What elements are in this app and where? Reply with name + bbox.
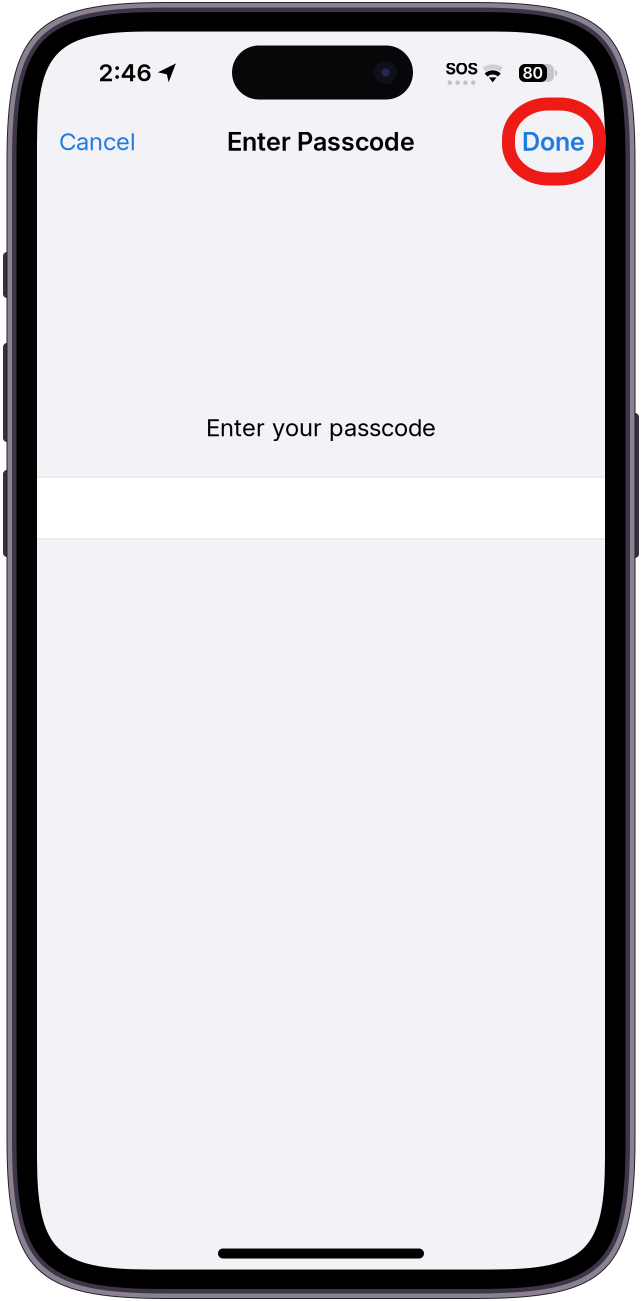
staticText: 80 [522, 63, 543, 83]
staticText: Cancel [59, 127, 136, 156]
staticText: Enter Passcode [227, 126, 415, 157]
staticText: 2:46 [98, 58, 151, 87]
button[interactable]: Cancel [59, 119, 147, 163]
staticText: Done [522, 126, 585, 157]
staticText: Enter your passcode [206, 413, 436, 442]
staticText: SOS [445, 59, 477, 78]
button[interactable]: Done [513, 119, 585, 163]
